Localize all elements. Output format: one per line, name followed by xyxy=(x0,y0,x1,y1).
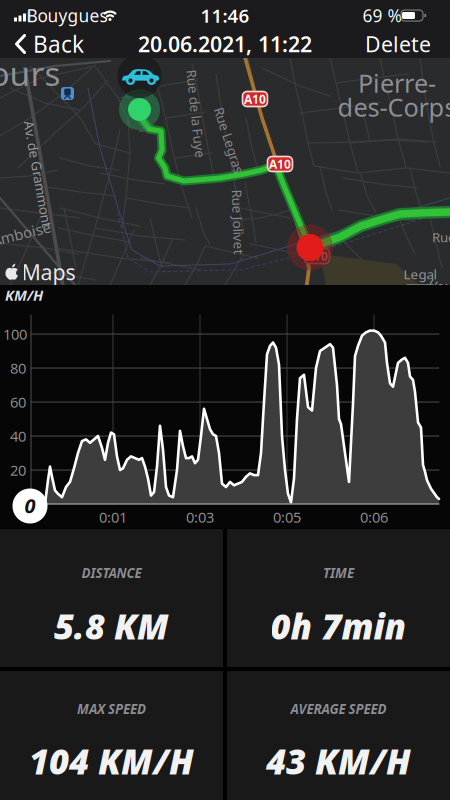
staticText: 0:03 xyxy=(186,507,214,527)
staticText: Back xyxy=(33,29,84,59)
staticText: KM/H xyxy=(5,285,43,305)
staticText: Bouygues xyxy=(26,4,107,27)
staticText: 100 xyxy=(3,324,27,344)
staticText: 60 xyxy=(10,392,26,412)
staticText: 0:05 xyxy=(273,507,301,527)
staticText: MAX SPEED xyxy=(77,700,146,718)
button[interactable]: Legal xyxy=(403,265,436,285)
staticText: 0 xyxy=(24,492,35,519)
staticText: 104 KM/H xyxy=(29,738,194,784)
staticText: Pierre- xyxy=(358,66,436,100)
staticText: des-Corps xyxy=(337,90,450,124)
staticText: A10 xyxy=(306,248,328,264)
staticText: 40 xyxy=(10,426,26,446)
staticText: Rue de la Fuye xyxy=(151,105,240,123)
staticText: Rue Legras xyxy=(195,131,263,149)
staticText: uclos xyxy=(428,279,450,297)
staticText: 'Amboise xyxy=(0,224,51,244)
staticText: 0h 7min xyxy=(270,603,406,649)
staticText: 5.8 KM xyxy=(54,603,169,649)
staticText: A10 xyxy=(244,91,266,107)
staticText: Delete xyxy=(365,30,431,58)
staticText: DISTANCE xyxy=(81,564,141,582)
staticText: ours xyxy=(0,51,60,95)
staticText: AVERAGE SPEED xyxy=(290,700,386,718)
staticText: 20.06.2021, 11:22 xyxy=(138,30,312,58)
staticText: 43 KM/H xyxy=(266,738,411,784)
staticText: Legal xyxy=(403,265,436,283)
staticText: 20 xyxy=(10,460,26,480)
staticText: TIME xyxy=(323,564,354,582)
button[interactable]: Delete xyxy=(355,30,441,58)
staticText: A10 xyxy=(269,156,291,172)
staticText: Av. de Grammont xyxy=(0,165,92,183)
staticText: 0:01 xyxy=(99,507,127,527)
staticText: 0:06 xyxy=(360,507,388,527)
staticText: 69 % xyxy=(362,4,401,27)
staticText: Rue xyxy=(432,228,450,246)
staticText: 11:46 xyxy=(200,3,249,28)
staticText: Maps xyxy=(21,258,75,286)
staticText: 80 xyxy=(10,358,26,378)
button[interactable]: Back xyxy=(2,30,92,58)
staticText: Rue Jolivet xyxy=(205,213,270,231)
